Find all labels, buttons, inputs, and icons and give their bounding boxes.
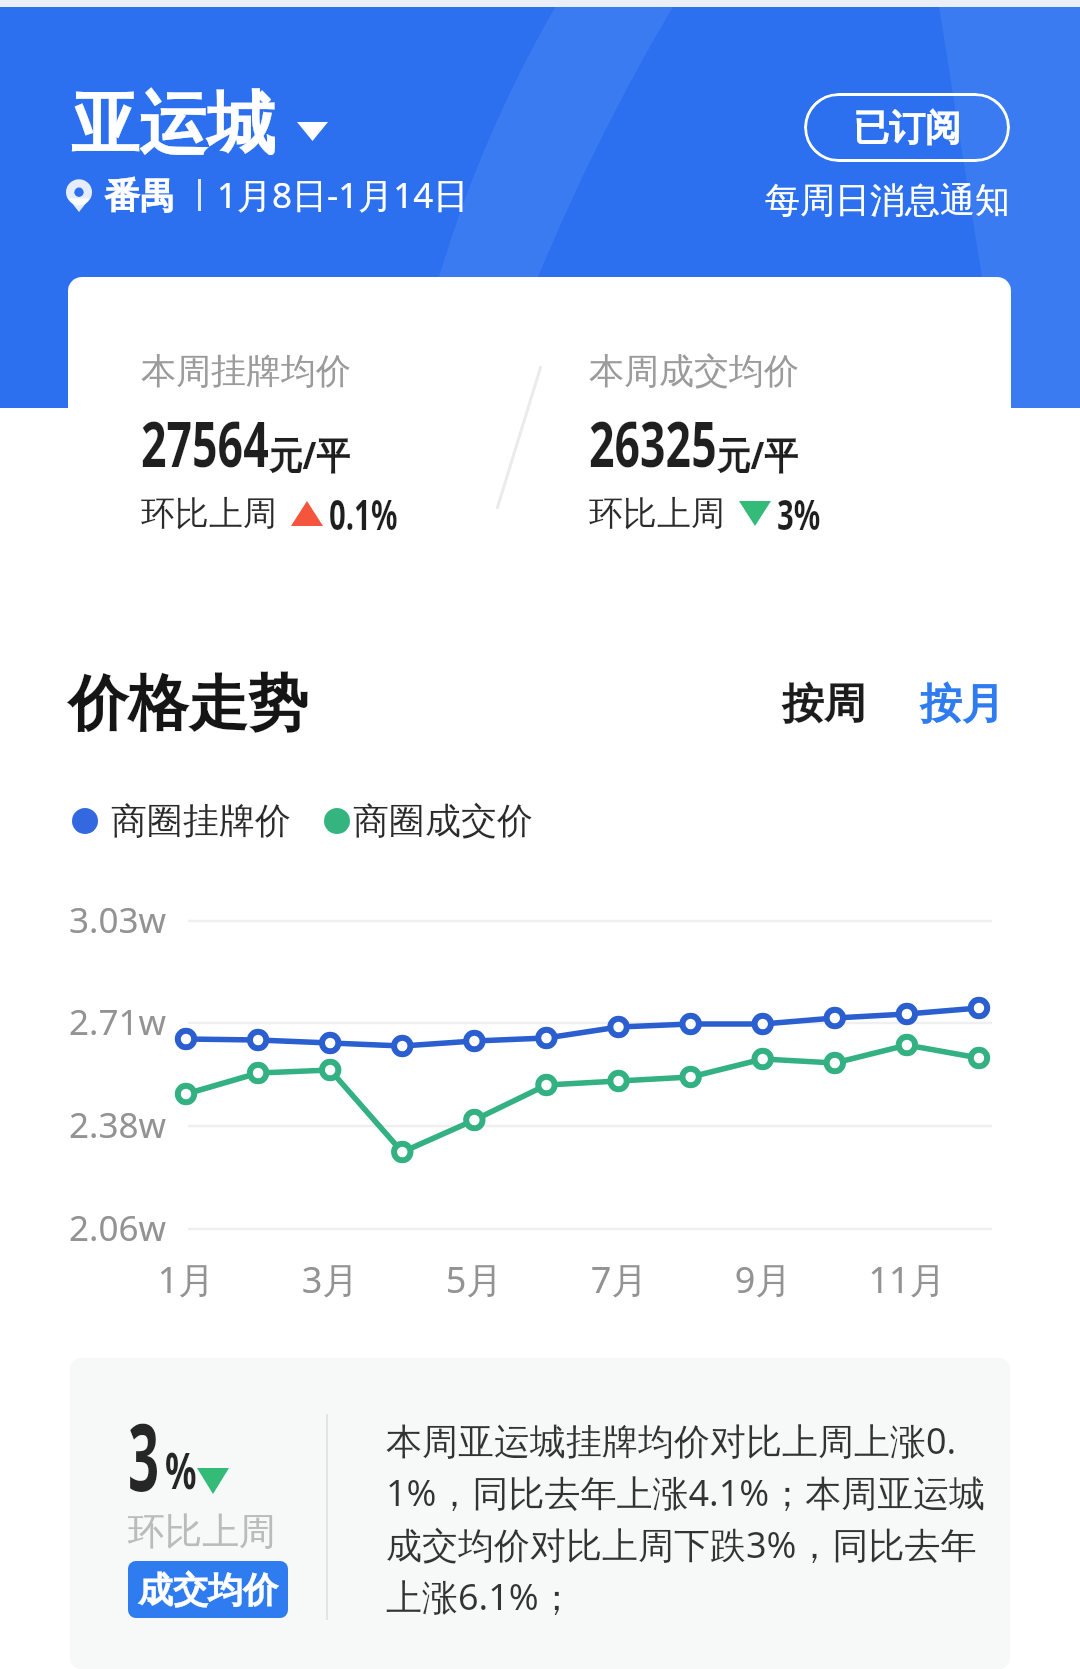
staticText: 每周日消息通知 (765, 178, 1010, 222)
button[interactable]: 按周 (776, 670, 872, 739)
staticText: 商圈挂牌价 (111, 798, 291, 843)
staticText: 按周 (782, 678, 866, 731)
button[interactable]: 已订阅 (804, 93, 1010, 162)
staticText: 2.71w (69, 998, 166, 1046)
staticText: 1月8日-1月14日 (217, 171, 469, 219)
staticText: 7月 (559, 1255, 679, 1304)
staticText: 环比上周 (141, 492, 277, 535)
staticText: 价格走势 (68, 666, 308, 742)
staticText: 27564 (141, 401, 269, 485)
staticText: 按月 (920, 678, 1004, 731)
staticText: 商圈成交价 (353, 798, 533, 843)
button[interactable]: 按月 (914, 670, 1010, 739)
staticText: 番禺 (104, 173, 176, 218)
staticText: 3% (777, 485, 820, 542)
staticText: 5月 (414, 1255, 534, 1304)
staticText: 2.38w (69, 1101, 166, 1149)
staticText: 3月 (270, 1255, 390, 1304)
button[interactable]: 亚运城 (71, 82, 328, 168)
staticText: 0.1% (329, 485, 398, 542)
staticText: 11月 (847, 1255, 967, 1304)
staticText: 2.06w (69, 1204, 166, 1252)
staticText: 环比上周 (128, 1508, 276, 1555)
staticText: 3 (128, 1391, 159, 1519)
button[interactable]: 成交均价 (128, 1561, 288, 1618)
staticText: 9月 (703, 1255, 823, 1304)
staticText: 已订阅 (853, 105, 961, 150)
staticText: % (165, 1436, 197, 1504)
staticText: 元/平 (269, 428, 350, 480)
staticText: 本周成交均价 (589, 349, 799, 393)
staticText: 成交均价 (138, 1568, 278, 1612)
staticText: 环比上周 (589, 492, 725, 535)
staticText: 亚运城 (71, 82, 275, 168)
staticText: 1月 (126, 1255, 246, 1304)
staticText: 本周亚运城挂牌均价对比上周上涨0. 1%，同比去年上涨4.1%；本周亚运城 成交… (386, 1416, 986, 1621)
staticText: 元/平 (717, 428, 798, 480)
staticText: 3.03w (69, 896, 166, 944)
staticText: 26325 (589, 401, 717, 485)
staticText: 本周挂牌均价 (141, 349, 351, 393)
